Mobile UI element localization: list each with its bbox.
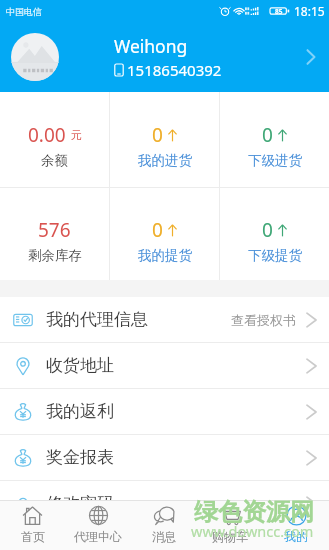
- staticText: 修改密码: [46, 493, 114, 514]
- button[interactable]: 我的代理信息: [0, 297, 329, 342]
- staticText: 0.00: [28, 122, 66, 148]
- staticText: 购物车: [212, 529, 248, 544]
- button[interactable]: 消息: [131, 501, 197, 550]
- staticText: 我的提货: [138, 247, 192, 264]
- staticText: www.downcc.com: [191, 521, 314, 541]
- staticText: 首页: [21, 529, 45, 544]
- staticText: 0: [152, 217, 163, 243]
- staticText: 0: [262, 122, 273, 148]
- button[interactable]: 0: [110, 188, 219, 280]
- staticText: 0: [262, 217, 273, 243]
- staticText: 剩余库存: [28, 247, 82, 264]
- staticText: 18:15: [294, 3, 325, 19]
- staticText: 15186540392: [127, 60, 222, 80]
- button[interactable]: 代理中心: [65, 501, 131, 550]
- button[interactable]: 购物车: [197, 501, 263, 550]
- button[interactable]: 576: [0, 188, 109, 280]
- staticText: 收货地址: [46, 355, 114, 376]
- staticText: 奖金报表: [46, 447, 114, 468]
- staticText: 0: [152, 122, 163, 148]
- staticText: 绿色资源网: [194, 497, 314, 527]
- staticText: 消息: [152, 529, 176, 544]
- button[interactable]: 0.00: [0, 92, 109, 187]
- staticText: 我的进货: [138, 152, 192, 169]
- button[interactable]: 我的返利: [0, 389, 329, 434]
- button[interactable]: 0: [220, 188, 329, 280]
- staticText: 576: [38, 217, 71, 243]
- button[interactable]: 我的: [263, 501, 329, 550]
- staticText: 下级提货: [248, 247, 302, 264]
- staticText: 下级进货: [248, 152, 302, 169]
- staticText: 查看授权书: [231, 312, 296, 328]
- staticText: 85: [275, 7, 283, 16]
- staticText: 代理中心: [74, 529, 122, 544]
- button[interactable]: 收货地址: [0, 343, 329, 388]
- staticText: Weihong: [114, 34, 188, 58]
- staticText: 我的返利: [46, 401, 114, 422]
- button[interactable]: 0: [110, 92, 219, 187]
- staticText: 余额: [41, 152, 68, 169]
- staticText: 我的代理信息: [46, 309, 148, 330]
- staticText: 我的: [284, 529, 308, 544]
- button[interactable]: Weihong: [0, 22, 329, 92]
- staticText: 元: [71, 128, 82, 142]
- staticText: 中国电信: [6, 6, 42, 17]
- button[interactable]: 首页: [0, 501, 65, 550]
- button[interactable]: 奖金报表: [0, 435, 329, 480]
- button[interactable]: 0: [220, 92, 329, 187]
- other: Profile details: [306, 48, 316, 66]
- button[interactable]: 修改密码: [0, 481, 329, 526]
